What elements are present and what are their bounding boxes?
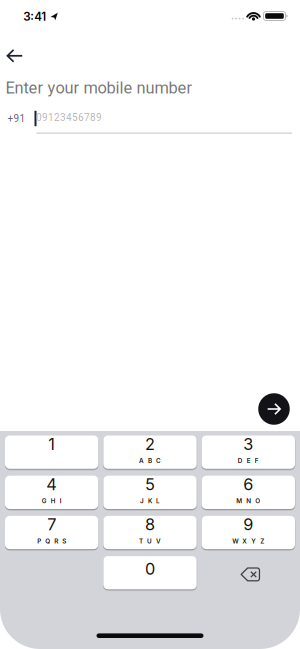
staticText: M N O [236, 497, 260, 505]
staticText: +91 [7, 113, 25, 124]
button[interactable]: 9 [202, 516, 295, 549]
staticText: 8 [145, 515, 155, 534]
button[interactable]: 4 [5, 476, 98, 509]
staticText: J K L [140, 497, 160, 505]
staticText: 5 [145, 474, 155, 494]
button[interactable]: 8 [103, 516, 197, 549]
staticText: 4 [46, 474, 57, 494]
staticText: 2 [145, 434, 155, 454]
button[interactable]: 7 [5, 516, 98, 549]
staticText: Enter your mobile number [6, 78, 193, 97]
button[interactable]: Next [258, 393, 290, 425]
button[interactable]: 6 [202, 476, 295, 509]
button[interactable]: 1 [5, 435, 98, 469]
staticText: 9 [243, 515, 253, 534]
staticText: 1 [48, 434, 55, 454]
staticText: P Q R S [37, 537, 66, 545]
button[interactable]: 5 [103, 476, 197, 509]
staticText: 6 [243, 474, 253, 494]
button[interactable]: 0 [103, 556, 197, 589]
staticText: 7 [47, 515, 56, 534]
staticText: 3 [243, 434, 253, 454]
staticText: W X Y Z [232, 537, 264, 545]
staticText: 3:41 [23, 9, 46, 23]
staticText: G H I [42, 497, 62, 505]
button[interactable]: Delete [202, 556, 295, 589]
button[interactable]: Back [0, 38, 36, 74]
staticText: 09123456789 [36, 112, 102, 123]
staticText: T U V [139, 537, 161, 545]
staticText: D E F [238, 457, 259, 465]
button[interactable]: 3 [202, 435, 295, 469]
button[interactable]: 2 [103, 435, 197, 469]
staticText: A B C [139, 457, 161, 465]
staticText: 0 [145, 559, 155, 579]
